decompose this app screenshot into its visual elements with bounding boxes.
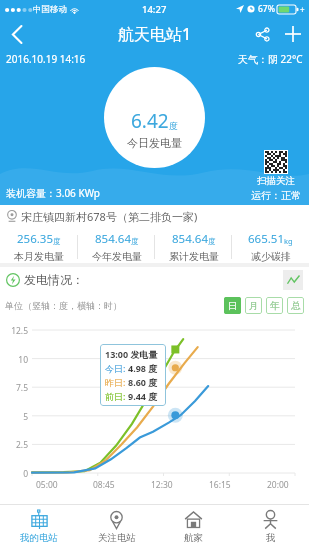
staticText: 航天电站1: [118, 23, 192, 45]
staticText: 我: [266, 532, 276, 544]
staticText: 扫描关注: [257, 175, 295, 187]
staticText: 我的电站: [20, 532, 58, 544]
staticText: 12.5: [0, 325, 28, 337]
staticText: kg: [284, 236, 293, 246]
staticText: 12:30: [151, 479, 173, 491]
staticText: 854.64: [95, 231, 131, 247]
button[interactable]: Chart view: [283, 270, 303, 290]
staticText: 减少碳排: [251, 250, 291, 263]
button[interactable]: 年: [266, 297, 283, 314]
staticText: 昨日:: [105, 376, 126, 388]
staticText: 256.35: [17, 231, 53, 247]
staticText: 2016.10.19 14:16: [6, 52, 86, 66]
staticText: 月: [249, 300, 259, 312]
staticText: 度: [53, 237, 61, 246]
staticText: 累计发电量: [169, 250, 219, 263]
staticText: 8.60 度: [128, 376, 158, 388]
button[interactable]: 我的电站: [0, 505, 78, 550]
staticText: 20:00: [267, 479, 289, 491]
button[interactable]: Add: [277, 18, 309, 50]
staticText: 今日:: [105, 362, 126, 374]
staticText: 2.5: [0, 439, 28, 451]
staticText: 宋庄镇四新村678号（第二排负一家): [21, 209, 198, 224]
staticText: 单位（竖轴：度，横轴：时）: [5, 300, 122, 311]
staticText: 5: [0, 411, 28, 423]
staticText: 天气：阴 22°C: [238, 52, 303, 66]
staticText: 关注电站: [98, 532, 136, 544]
staticText: 度: [169, 121, 178, 132]
staticText: 08:45: [93, 479, 115, 491]
staticText: 05:00: [36, 479, 58, 491]
staticText: 今年发电量: [92, 250, 142, 263]
button[interactable]: 854.64: [78, 227, 155, 267]
button[interactable]: 月: [245, 297, 262, 314]
staticText: 中国移动: [33, 4, 67, 15]
staticText: 年: [270, 300, 280, 312]
staticText: 7.5: [0, 382, 28, 394]
staticText: 16:15: [209, 479, 231, 491]
staticText: 前日:: [105, 390, 126, 402]
staticText: 6.42: [131, 108, 169, 134]
button[interactable]: 665.51: [232, 227, 309, 267]
staticText: 4.98 度: [128, 362, 158, 374]
staticText: 总: [291, 300, 301, 312]
staticText: 10: [0, 354, 28, 366]
button[interactable]: 航家: [155, 505, 232, 550]
staticText: +: [300, 4, 305, 15]
staticText: 运行：正常: [251, 189, 301, 202]
button[interactable]: 256.35: [0, 227, 78, 267]
button[interactable]: 日: [224, 297, 241, 314]
staticText: 0: [0, 468, 28, 480]
staticText: 14:27: [142, 3, 167, 16]
staticText: 日: [228, 300, 238, 312]
button[interactable]: Scan QR code: [264, 150, 288, 174]
staticText: 航家: [184, 532, 203, 544]
button[interactable]: 6.42: [104, 67, 205, 168]
staticText: 67%: [258, 3, 275, 15]
button[interactable]: 854.64: [155, 227, 232, 267]
staticText: 度: [208, 237, 216, 246]
staticText: 854.64: [172, 231, 208, 247]
staticText: 装机容量：3.06 KWp: [6, 186, 100, 200]
staticText: 13:00 发电量: [105, 348, 158, 360]
staticText: 今日发电量: [127, 136, 182, 150]
button[interactable]: Back: [0, 18, 34, 50]
button[interactable]: 我: [232, 505, 309, 550]
staticText: 665.51: [248, 231, 284, 247]
staticText: 本月发电量: [14, 250, 64, 263]
staticText: 9.44 度: [128, 390, 158, 402]
button[interactable]: 总: [287, 297, 304, 314]
button[interactable]: 关注电站: [78, 505, 155, 550]
button[interactable]: Share: [247, 19, 277, 49]
staticText: 度: [131, 237, 139, 246]
staticText: 发电情况：: [24, 272, 84, 287]
